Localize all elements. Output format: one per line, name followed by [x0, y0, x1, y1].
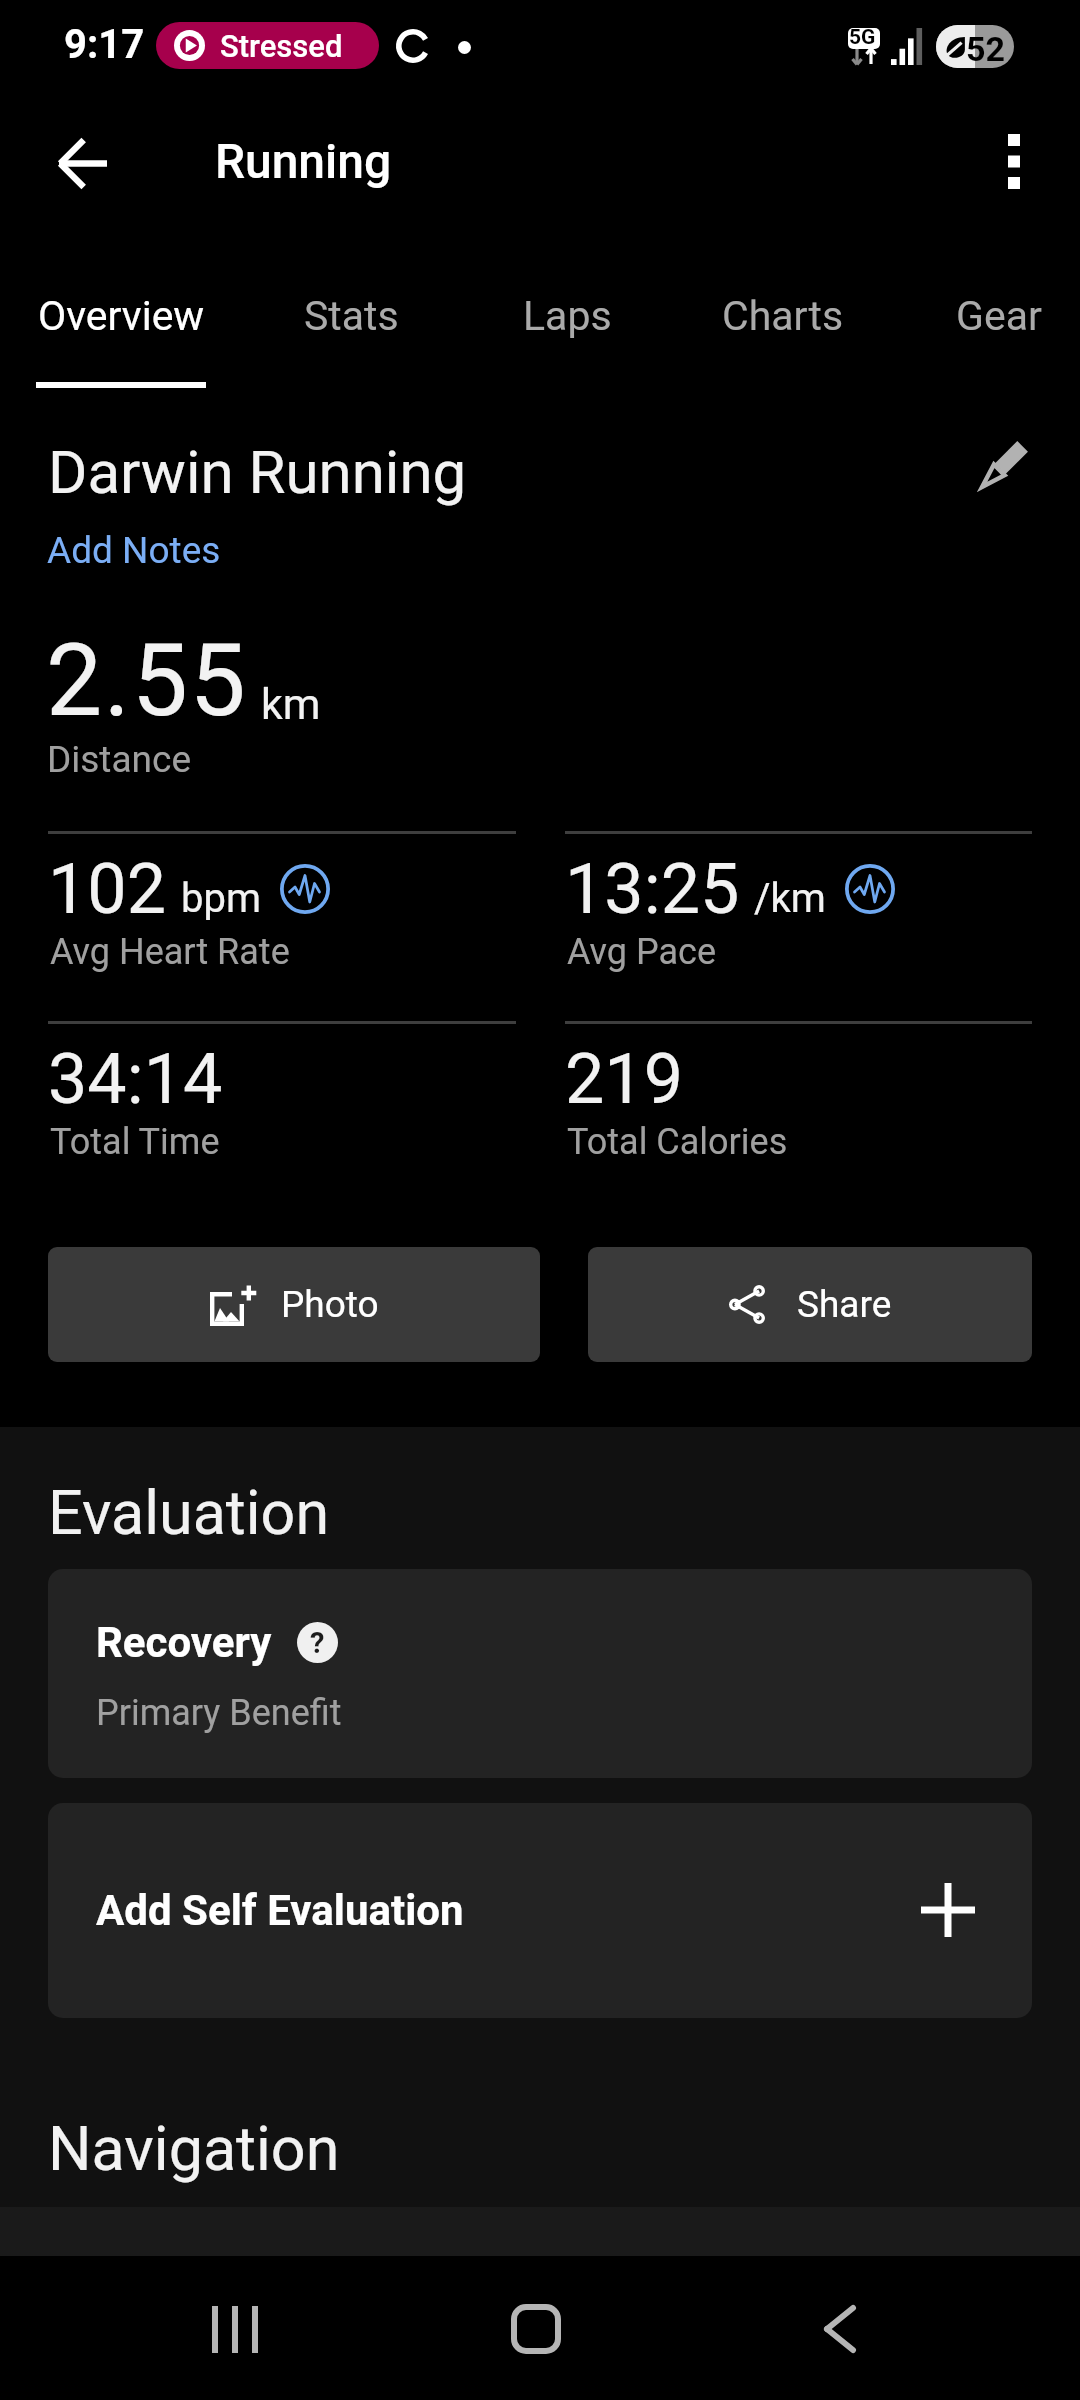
staticText: Share	[797, 1283, 892, 1326]
staticText: Stressed	[220, 28, 343, 64]
staticText: Photo	[281, 1283, 379, 1326]
staticText: Darwin Running	[48, 437, 467, 507]
staticText: Add Notes	[47, 529, 221, 572]
staticText: 13:25	[565, 848, 740, 930]
button[interactable]: Add Notes	[47, 529, 221, 572]
staticText: Laps	[523, 292, 612, 340]
staticText: Recovery	[96, 1618, 272, 1667]
button[interactable]: Laps	[469, 225, 666, 383]
button[interactable]: Share	[588, 1247, 1032, 1362]
staticText: 52	[966, 29, 1006, 68]
staticText: Avg Pace	[567, 931, 716, 973]
staticText: km	[261, 679, 321, 729]
staticText: Navigation	[48, 2113, 340, 2184]
staticText: Running	[215, 133, 392, 189]
staticText: Total Time	[50, 1121, 220, 1163]
staticText: 5G	[849, 25, 876, 50]
staticText: 219	[565, 1038, 684, 1120]
staticText: Evaluation	[48, 1477, 330, 1548]
button[interactable]: Photo	[48, 1247, 540, 1362]
staticText: 9:17	[64, 21, 145, 68]
button[interactable]: Add Self Evaluation	[48, 1803, 1032, 2018]
staticText: 102	[48, 848, 167, 930]
staticText: 34:14	[48, 1038, 223, 1120]
staticText: Stats	[304, 292, 399, 340]
button[interactable]: Gear	[902, 225, 1080, 383]
staticText: Add Self Evaluation	[96, 1886, 464, 1935]
button[interactable]: Overview	[0, 225, 258, 383]
button[interactable]: More options	[971, 118, 1057, 204]
button[interactable]: Back	[780, 2269, 900, 2389]
button[interactable]: Charts	[668, 225, 897, 383]
staticText: Primary Benefit	[96, 1692, 342, 1734]
staticText: bpm	[181, 875, 261, 922]
button[interactable]: Back	[39, 120, 125, 206]
staticText: Total Calories	[567, 1121, 788, 1163]
button[interactable]: Home	[476, 2269, 596, 2389]
staticText: 2.55	[46, 622, 248, 739]
button[interactable]: Edit	[966, 423, 1046, 503]
button[interactable]: Recovery	[48, 1569, 1032, 1778]
staticText: Charts	[722, 292, 844, 340]
button[interactable]: Stats	[250, 225, 453, 383]
staticText: Avg Heart Rate	[50, 931, 290, 973]
staticText: Gear	[956, 292, 1042, 340]
staticText: Overview	[38, 292, 205, 340]
button[interactable]: Recent apps	[175, 2269, 295, 2389]
staticText: ?	[310, 1626, 325, 1660]
staticText: Distance	[47, 738, 192, 781]
staticText: /km	[754, 875, 826, 922]
